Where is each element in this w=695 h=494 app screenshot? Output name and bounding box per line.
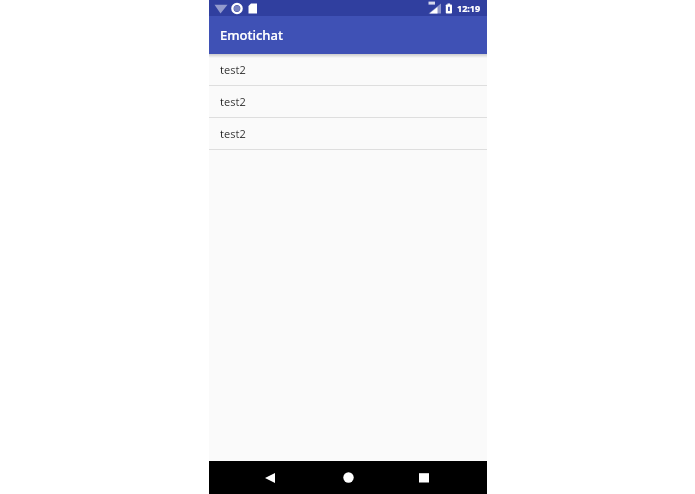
button[interactable]: test2 (209, 86, 487, 117)
staticText: 12:19 (457, 2, 481, 14)
button[interactable] (249, 461, 290, 494)
button[interactable] (403, 461, 444, 494)
button[interactable] (327, 461, 369, 494)
staticText: test2 (220, 126, 246, 141)
staticText: Emotichat (220, 26, 283, 44)
button[interactable]: test2 (209, 118, 487, 149)
staticText: test2 (220, 94, 246, 109)
staticText: test2 (220, 62, 246, 77)
button[interactable]: test2 (209, 54, 487, 85)
